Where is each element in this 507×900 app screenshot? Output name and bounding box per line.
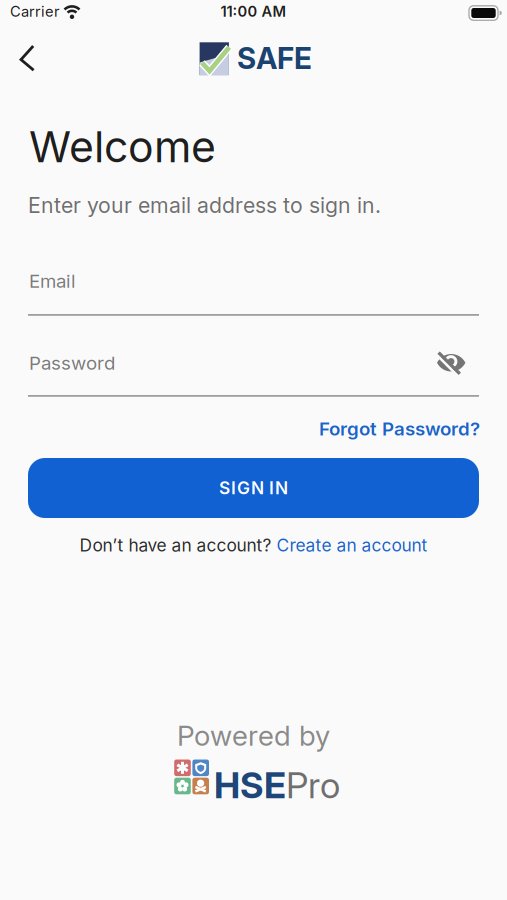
staticText: S I G N I N: [219, 478, 288, 498]
staticText: Don’t have an account?: [79, 535, 271, 555]
staticText: Create an account: [276, 535, 427, 555]
staticText: Forgot Password?: [319, 418, 480, 440]
staticText: Welcome: [29, 121, 216, 172]
staticText: SAFE: [237, 41, 312, 76]
staticText: Password: [29, 352, 115, 374]
staticText: 11:00 AM: [220, 3, 286, 20]
staticText: Powered by: [177, 719, 330, 752]
staticText: Email: [29, 270, 76, 292]
staticText: Carrier: [10, 3, 60, 20]
staticText: HSE: [214, 764, 286, 806]
staticText: Enter your email address to sign in.: [28, 193, 381, 218]
staticText: Pro: [286, 764, 340, 806]
